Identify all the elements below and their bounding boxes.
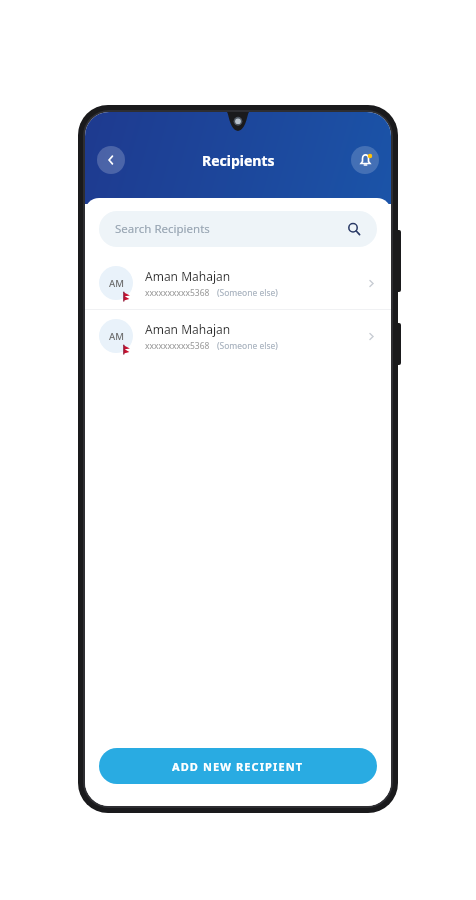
staticText: (Someone else)	[217, 287, 278, 299]
staticText: Search Recipients	[115, 221, 347, 237]
button[interactable]: Back	[97, 146, 125, 174]
staticText: (Someone else)	[217, 340, 278, 352]
button[interactable]: AM	[85, 257, 391, 309]
staticText: AM	[109, 330, 124, 343]
button[interactable]: Notifications	[351, 146, 379, 174]
button[interactable]: AM	[85, 310, 391, 362]
staticText: Recipients	[202, 151, 275, 170]
staticText: AM	[109, 277, 124, 290]
button[interactable]: Search Recipients	[99, 211, 377, 247]
staticText: xxxxxxxxxx5368	[145, 287, 210, 299]
staticText: Aman Mahajan	[145, 321, 231, 337]
button[interactable]: ADD NEW RECIPIENT	[99, 748, 377, 784]
staticText: ADD NEW RECIPIENT	[172, 759, 304, 774]
staticText: xxxxxxxxxx5368	[145, 340, 210, 352]
staticText: Aman Mahajan	[145, 268, 231, 284]
